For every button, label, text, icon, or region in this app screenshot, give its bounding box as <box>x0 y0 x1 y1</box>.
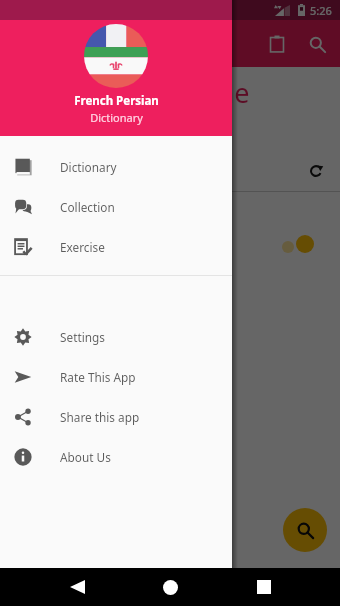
staticText: Rate This App <box>60 369 136 385</box>
button[interactable]: Share this app <box>0 397 232 437</box>
button[interactable]: Home <box>153 570 187 604</box>
button[interactable]: Clipboard <box>257 24 297 64</box>
button[interactable]: Search <box>283 508 327 552</box>
staticText: Exercise <box>60 239 105 255</box>
button[interactable]: Search <box>297 24 337 64</box>
button[interactable]: Settings <box>0 317 232 357</box>
button[interactable]: Back <box>60 570 94 604</box>
staticText: 5:26 <box>310 3 332 18</box>
button[interactable]: About Us <box>0 437 232 477</box>
button[interactable]: Rate This App <box>0 357 232 397</box>
staticText: Settings <box>60 329 105 345</box>
staticText: Dictionary <box>60 159 117 175</box>
button[interactable]: Dictionary <box>0 147 232 187</box>
staticText: Share this app <box>60 409 140 425</box>
button[interactable] <box>8 203 332 287</box>
staticText: French Persian <box>74 93 159 109</box>
button[interactable]: Exercise <box>0 227 232 267</box>
staticText: Collection <box>60 199 115 215</box>
staticText: Welcome to Home <box>16 74 250 111</box>
staticText: About Us <box>60 449 111 465</box>
staticText: Dictionary <box>90 110 143 125</box>
button[interactable]: Collection <box>0 187 232 227</box>
button[interactable]: Recents <box>247 570 281 604</box>
button[interactable]: Refresh <box>296 151 336 191</box>
